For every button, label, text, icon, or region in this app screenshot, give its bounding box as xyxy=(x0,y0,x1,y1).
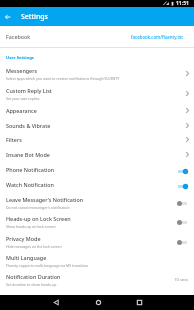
button[interactable]: Custom Reply List xyxy=(0,84,194,103)
button[interactable]: Switch off xyxy=(176,237,190,248)
staticText: Show heads-up on lock screen xyxy=(6,224,56,229)
staticText: Settings xyxy=(21,12,48,21)
staticText: Do not cancel messenger's notification xyxy=(6,205,70,210)
staticText: Select apps which you want to receive no… xyxy=(6,76,120,81)
staticText: Watch Notification xyxy=(6,181,54,188)
button[interactable]: Sounds & Vibrate xyxy=(0,118,194,132)
staticText: Fluenty supports multi-language via MS t… xyxy=(6,263,89,268)
button[interactable]: Switch on xyxy=(176,166,190,177)
button[interactable]: Phone Notification xyxy=(0,162,194,176)
button[interactable]: Switch off xyxy=(176,198,190,209)
staticText: Filters xyxy=(6,136,22,143)
button[interactable]: Messengers xyxy=(0,64,194,83)
staticText: Set duration to show heads-up xyxy=(6,282,57,287)
staticText: facebook.com/fluenty.inc xyxy=(131,34,184,40)
button[interactable]: Heads-up on Lock Screen xyxy=(0,212,194,231)
staticText: User Settings xyxy=(6,55,34,61)
button[interactable]: Facebook xyxy=(0,26,194,47)
staticText: Privacy Mode xyxy=(6,235,41,242)
staticText: Messengers xyxy=(6,67,38,74)
staticText: 10 secs xyxy=(174,277,189,283)
button[interactable]: Privacy Mode xyxy=(0,232,194,251)
button[interactable]: Recent apps xyxy=(132,295,147,310)
button[interactable]: Multi Language xyxy=(0,251,194,270)
staticText: Phone Notification xyxy=(6,166,55,173)
staticText: Heads-up on Lock Screen xyxy=(6,215,71,222)
staticText: Multi Language xyxy=(6,254,47,261)
button[interactable]: Home xyxy=(91,295,106,310)
button[interactable]: Leave Messager's Notification xyxy=(0,193,194,212)
staticText: Sounds & Vibrate xyxy=(6,122,51,129)
staticText: 11:51 xyxy=(176,0,189,7)
button[interactable]: Switch off xyxy=(176,217,190,228)
staticText: Leave Messager's Notification xyxy=(6,196,84,203)
button[interactable]: Appearance xyxy=(0,103,194,117)
button[interactable]: Switch on xyxy=(176,181,190,192)
staticText: Hide messages on the lock screen xyxy=(6,244,62,249)
staticText: Insane Bot Mode xyxy=(6,151,50,158)
button[interactable]: Insane Bot Mode xyxy=(0,147,194,161)
staticText: Notification Duration xyxy=(6,273,61,280)
staticText: Appearance xyxy=(6,107,37,114)
button[interactable]: Notification Duration xyxy=(0,270,194,289)
staticText: Facebook xyxy=(6,33,31,40)
button[interactable]: Filters xyxy=(0,132,194,146)
button[interactable]: Back xyxy=(2,11,14,23)
button[interactable]: Back xyxy=(49,295,64,310)
staticText: Set your own replies xyxy=(6,96,40,101)
staticText: Custom Reply List xyxy=(6,87,52,94)
button[interactable]: Watch Notification xyxy=(0,177,194,191)
